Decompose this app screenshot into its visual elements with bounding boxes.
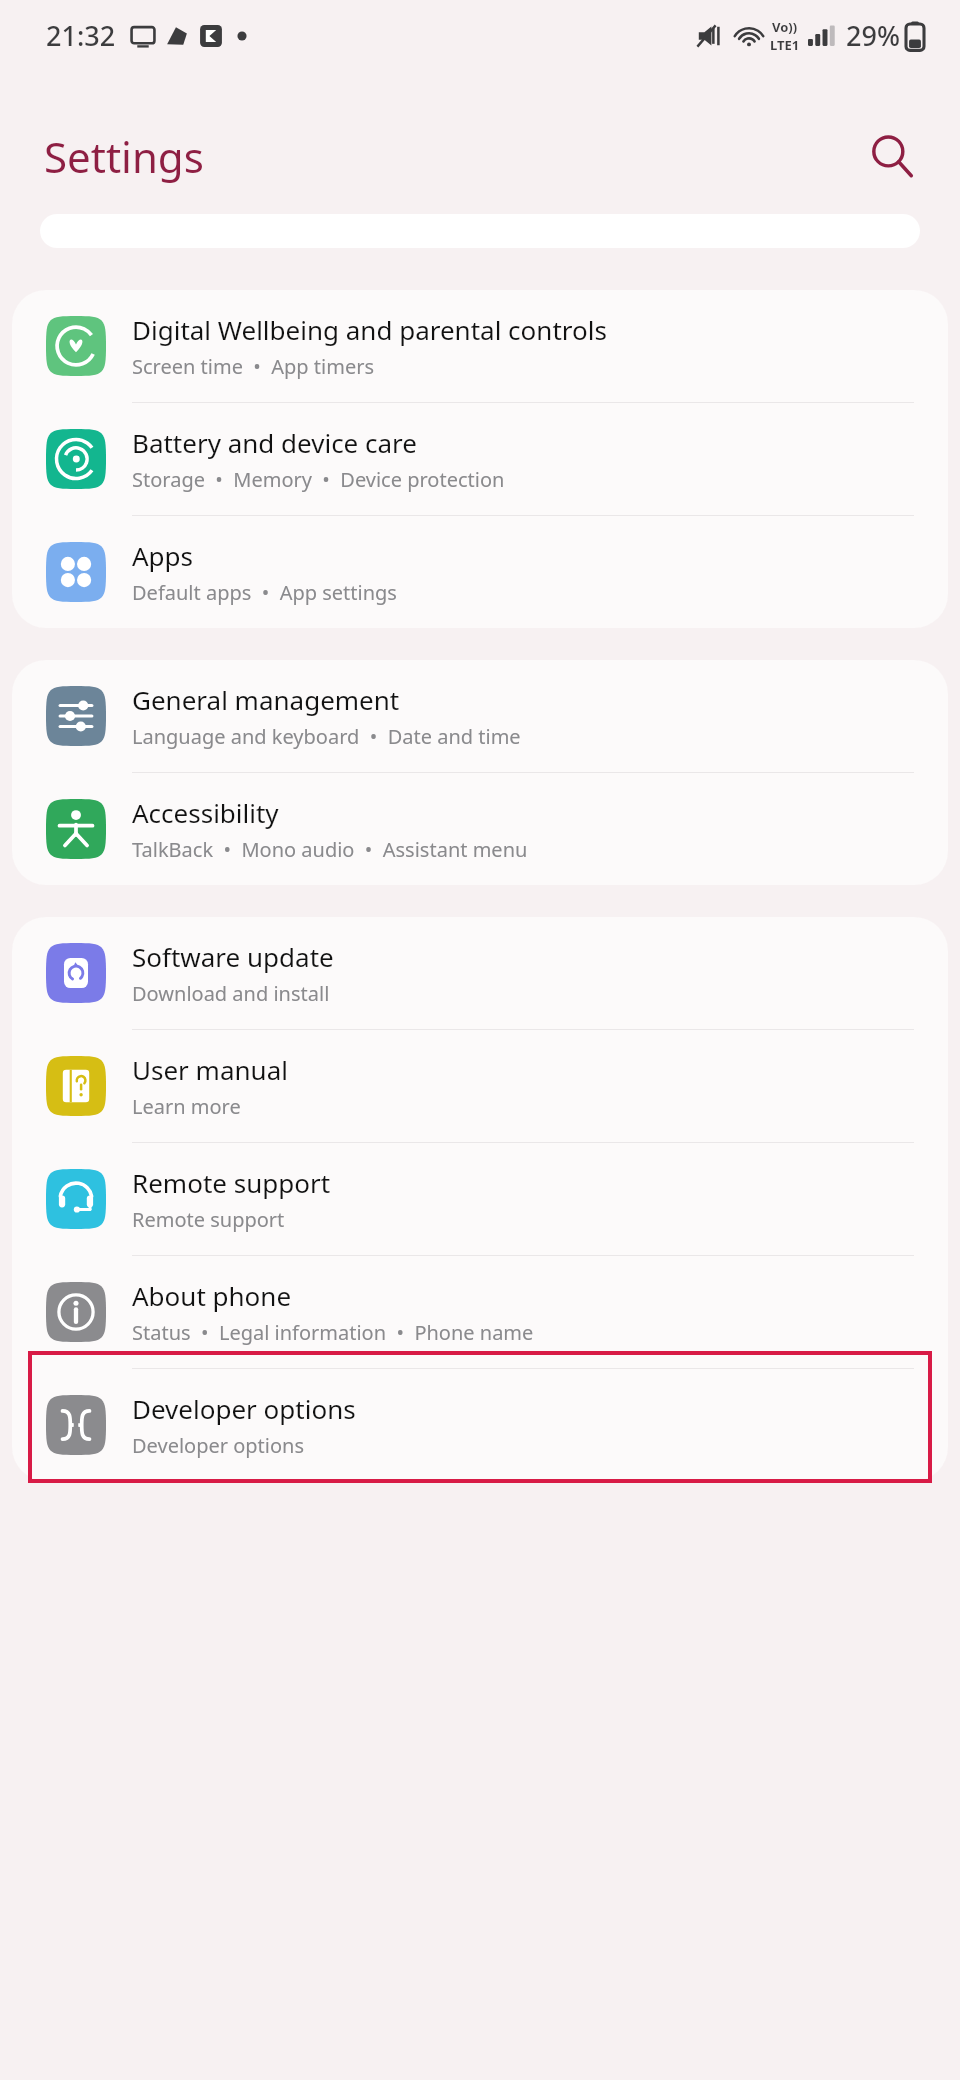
staticText: Remote support xyxy=(132,1165,331,1200)
staticText: Language and keyboard • Date and time xyxy=(132,723,521,750)
button[interactable]: Developer options xyxy=(12,1369,948,1481)
staticText: Vo)) xyxy=(772,18,798,36)
staticText: Storage • Memory • Device protection xyxy=(132,466,505,493)
button[interactable]: User manual xyxy=(12,1030,948,1142)
staticText: 21:32 xyxy=(46,17,116,54)
staticText: Apps xyxy=(132,538,194,573)
staticText: TalkBack • Mono audio • Assistant menu xyxy=(132,836,528,863)
staticText: Status • Legal information • Phone name xyxy=(132,1319,534,1346)
button[interactable]: Software update xyxy=(12,917,948,1029)
staticText: Screen time • App timers xyxy=(132,353,375,380)
other: Digital Wellbeing and parental controls xyxy=(46,316,106,376)
staticText: Default apps • App settings xyxy=(132,579,397,606)
other: Battery and device care xyxy=(46,429,106,489)
button[interactable]: Accessibility xyxy=(12,773,948,885)
other: About phone xyxy=(46,1282,106,1342)
staticText: Learn more xyxy=(132,1093,241,1120)
other: Software update xyxy=(46,943,106,1003)
button[interactable]: Digital Wellbeing and parental controls xyxy=(12,290,948,402)
staticText: 29% xyxy=(846,17,900,54)
button[interactable]: Battery and device care xyxy=(12,403,948,515)
staticText: About phone xyxy=(132,1278,292,1313)
staticText: Developer options xyxy=(132,1432,305,1459)
staticText: LTE1 xyxy=(770,36,800,54)
other: Developer options xyxy=(46,1395,106,1455)
staticText: Download and install xyxy=(132,980,330,1007)
staticText: Remote support xyxy=(132,1206,285,1233)
button[interactable]: Apps xyxy=(12,516,948,628)
staticText: Developer options xyxy=(132,1391,356,1426)
button[interactable]: About phone xyxy=(12,1256,948,1368)
staticText: Digital Wellbeing and parental controls xyxy=(132,312,607,347)
other: Accessibility xyxy=(46,799,106,859)
button[interactable]: Search xyxy=(856,120,928,192)
staticText: Settings xyxy=(44,128,204,185)
staticText: Accessibility xyxy=(132,795,279,830)
other: User manual xyxy=(46,1056,106,1116)
staticText: Battery and device care xyxy=(132,425,417,460)
other: Remote support xyxy=(46,1169,106,1229)
staticText: General management xyxy=(132,682,400,717)
button[interactable]: General management xyxy=(12,660,948,772)
staticText: User manual xyxy=(132,1052,288,1087)
button[interactable]: Remote support xyxy=(12,1143,948,1255)
other: Apps xyxy=(46,542,106,602)
staticText: Software update xyxy=(132,939,334,974)
other: General management xyxy=(46,686,106,746)
